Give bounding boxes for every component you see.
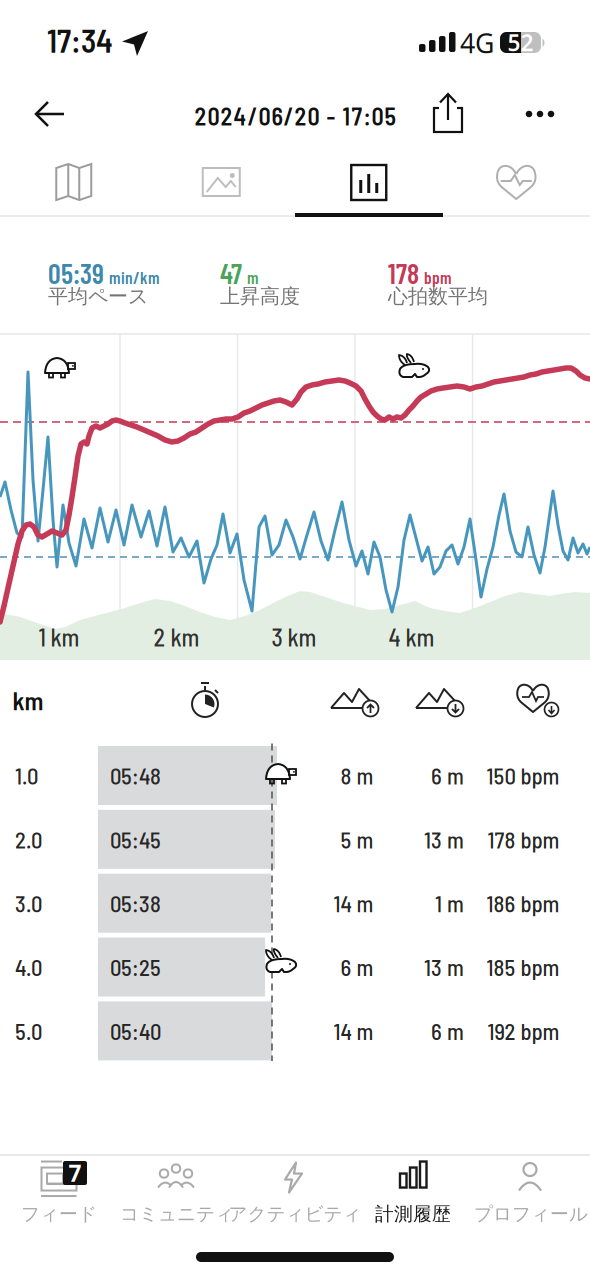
button[interactable]: More <box>518 92 562 136</box>
staticText: 186 bpm <box>486 890 559 917</box>
staticText: 1 km <box>38 623 79 651</box>
staticText: プロフィール <box>474 1202 588 1225</box>
staticText: 4 km <box>388 623 434 651</box>
staticText: km <box>12 685 43 715</box>
button[interactable]: 計測履歴 <box>354 1160 472 1226</box>
button[interactable]: Heart rate <box>443 154 590 210</box>
staticText: 8 m <box>340 762 373 789</box>
staticText: 5.0 <box>15 1017 42 1044</box>
button[interactable]: Back <box>26 92 74 136</box>
staticText: 3.0 <box>15 890 42 917</box>
button[interactable]: Map <box>0 154 147 210</box>
staticText: 7 <box>68 1158 81 1188</box>
staticText: 05:48 <box>110 762 161 789</box>
staticText: 4.0 <box>15 953 42 981</box>
staticText: 平均ペース <box>48 284 148 309</box>
button[interactable]: Photos <box>148 154 295 210</box>
button[interactable]: プロフィール <box>472 1160 590 1226</box>
staticText: 178 <box>388 256 419 290</box>
staticText: アクティビティ <box>228 1202 361 1225</box>
staticText: 6 m <box>340 953 373 981</box>
staticText: 2024/06/20 - 17:05 <box>194 102 395 130</box>
staticText: 13 m <box>424 953 464 981</box>
staticText: 6 m <box>431 762 464 789</box>
staticText: コミュニティ <box>120 1202 234 1225</box>
staticText: 14 m <box>333 1017 373 1044</box>
staticText: min/km <box>109 267 160 287</box>
staticText: 185 bpm <box>486 953 559 981</box>
staticText: 05:25 <box>110 953 161 981</box>
staticText: 05:40 <box>110 1017 161 1044</box>
staticText: 05:39 <box>48 256 104 290</box>
staticText: 4G <box>460 25 494 61</box>
button[interactable]: Charts <box>295 154 442 210</box>
staticText: 178 bpm <box>487 826 559 853</box>
staticText: 1.0 <box>15 762 38 789</box>
staticText: 6 m <box>431 1017 464 1044</box>
staticText: 14 m <box>333 890 373 917</box>
staticText: 上昇高度 <box>220 284 300 309</box>
staticText: 150 bpm <box>486 762 559 789</box>
staticText: 47 <box>220 256 242 290</box>
staticText: 192 bpm <box>487 1017 559 1044</box>
staticText: 計測履歴 <box>375 1202 451 1225</box>
staticText: 5 m <box>340 826 373 853</box>
button[interactable]: フィード <box>0 1160 118 1226</box>
staticText: 05:45 <box>110 826 161 853</box>
button[interactable]: コミュニティ <box>118 1160 236 1226</box>
button[interactable]: アクティビティ <box>236 1160 354 1226</box>
staticText: 2 km <box>153 623 199 651</box>
staticText: 52 <box>507 27 533 57</box>
staticText: 13 m <box>424 826 464 853</box>
button[interactable]: Share <box>425 89 471 137</box>
staticText: m <box>247 267 259 287</box>
staticText: 05:38 <box>110 890 161 917</box>
staticText: 心拍数平均 <box>388 284 488 309</box>
staticText: 2.0 <box>15 826 42 853</box>
staticText: 1 m <box>435 890 464 917</box>
staticText: 3 km <box>271 623 316 651</box>
staticText: フィード <box>21 1202 97 1225</box>
staticText: bpm <box>424 267 452 287</box>
staticText: 17:34 <box>47 21 113 59</box>
